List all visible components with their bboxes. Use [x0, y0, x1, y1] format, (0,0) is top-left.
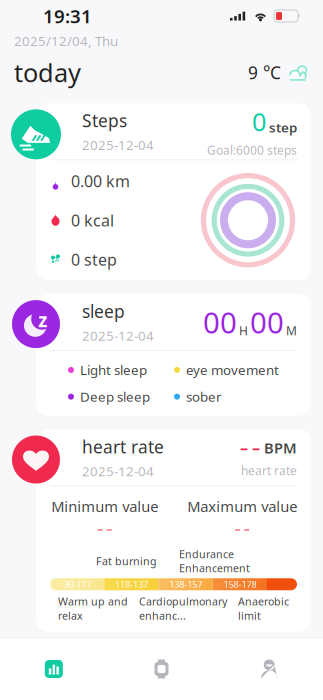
button[interactable]: SaO2: [36, 646, 311, 700]
button[interactable]: heart rate: [36, 429, 311, 632]
staticText: 0 kcal: [71, 210, 114, 231]
button[interactable]: sleep: [36, 294, 311, 415]
staticText: M: [286, 323, 297, 338]
staticText: Fat burning: [96, 554, 157, 568]
staticText: 30-117: [63, 578, 91, 590]
button[interactable]: Profile: [215, 638, 323, 700]
staticText: Endurance Enhancement: [179, 547, 250, 575]
staticText: Warm up and relax: [58, 594, 128, 622]
staticText: 0.00 km: [71, 170, 130, 191]
staticText: heart rate: [82, 435, 164, 458]
staticText: 00: [203, 303, 237, 342]
staticText: Cardiopulmonary enhanc...: [139, 594, 227, 622]
staticText: eye movement: [186, 361, 279, 379]
button[interactable]: Steps: [36, 103, 311, 280]
staticText: today: [14, 56, 81, 89]
staticText: 118-137: [115, 578, 148, 590]
staticText: – –: [97, 521, 112, 537]
staticText: 158-178: [223, 578, 256, 590]
staticText: 2025-12-04: [82, 327, 154, 344]
staticText: step: [269, 118, 297, 136]
staticText: z: [38, 308, 47, 332]
staticText: sleep: [82, 300, 125, 323]
staticText: – –: [240, 436, 260, 458]
staticText: 2025-12-04: [82, 136, 154, 154]
staticText: heart rate: [241, 463, 297, 479]
staticText: Light sleep: [80, 361, 147, 379]
staticText: 19:31: [43, 4, 92, 28]
staticText: BPM: [264, 438, 297, 458]
button[interactable]: Device: [108, 638, 215, 700]
staticText: 0 step: [71, 249, 117, 270]
staticText: 2025/12/04, Thu: [14, 32, 118, 50]
staticText: Maximum value: [187, 496, 297, 516]
staticText: 2025-12-04: [82, 462, 154, 480]
staticText: Steps: [82, 109, 127, 132]
staticText: 138-157: [169, 578, 202, 590]
staticText: H: [239, 323, 248, 338]
staticText: Goal:6000 steps: [207, 142, 297, 158]
staticText: 00: [250, 303, 284, 342]
staticText: Minimum value: [51, 496, 158, 516]
button[interactable]: Health: [0, 638, 108, 700]
staticText: 0: [252, 105, 266, 138]
staticText: 9 °C: [248, 61, 281, 84]
staticText: Deep sleep: [80, 388, 150, 405]
staticText: – –: [235, 521, 250, 537]
staticText: – –: [260, 663, 280, 684]
staticText: sober: [186, 388, 222, 405]
staticText: Anaerobic limit: [238, 594, 289, 622]
